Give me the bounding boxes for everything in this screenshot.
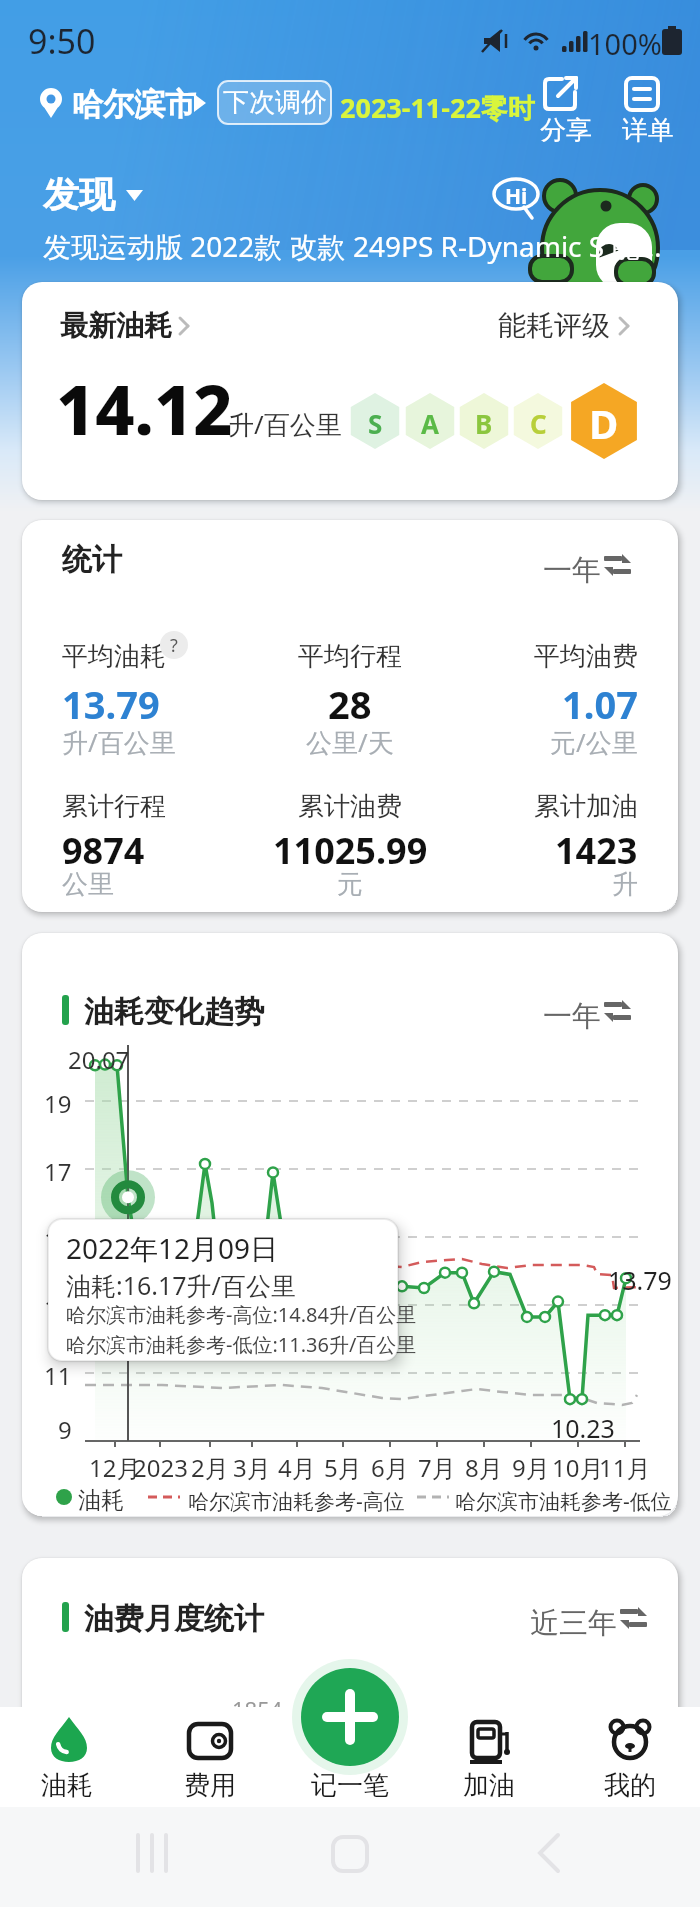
staticText: 能耗评级 [498, 308, 610, 343]
staticText: 公里 [62, 868, 114, 901]
staticText: 元/公里 [550, 724, 638, 760]
staticText: 1.07 [562, 678, 638, 730]
staticText: B [475, 406, 493, 441]
button[interactable] [50, 300, 210, 350]
staticText: 哈尔滨市油耗参考-低位:11.36升/百公里 [66, 1331, 417, 1358]
button[interactable] [536, 545, 646, 585]
staticText: 11025.99 [273, 826, 428, 875]
staticText: 1423 [555, 826, 638, 875]
staticText: 1854 [232, 1694, 283, 1724]
staticText: 哈尔滨市 [72, 85, 196, 124]
staticText: 17 [44, 1155, 72, 1188]
staticText: 9 [58, 1413, 72, 1446]
staticText: 一年 [543, 552, 601, 589]
staticText: 油耗 [78, 1486, 124, 1515]
staticText: 13.79 [608, 1263, 672, 1297]
staticText: 记一笔 [311, 1769, 389, 1802]
staticText: 2月 [191, 1451, 229, 1484]
staticText: 平均油耗 [62, 640, 166, 673]
staticText: 14.12 [56, 362, 233, 455]
staticText: 油耗:16.17升/百公里 [66, 1268, 296, 1302]
staticText: ? [170, 633, 178, 658]
staticText: 统计 [62, 541, 122, 579]
staticText: 升 [612, 868, 638, 901]
staticText: 28 [328, 678, 372, 730]
staticText: 升/百公里 [62, 724, 176, 760]
staticText: D [589, 396, 619, 450]
button[interactable] [490, 300, 650, 350]
button[interactable]: 下次调价 [218, 81, 331, 124]
staticText: 累计加油 [534, 790, 638, 823]
button[interactable] [506, 1600, 646, 1640]
staticText: 10.23 [551, 1411, 615, 1445]
staticText: 哈尔滨市油耗参考-高位 [188, 1487, 405, 1516]
staticText: 哈尔滨市油耗参考-低位 [455, 1487, 672, 1516]
staticText: 13.79 [62, 678, 160, 730]
staticText: 最新油耗 [60, 308, 172, 343]
staticText: 费用 [184, 1769, 236, 1802]
staticText: 7月 [418, 1451, 456, 1484]
staticText: 元 [337, 868, 363, 901]
staticText: 5月 [324, 1451, 362, 1484]
staticText: A [421, 406, 439, 441]
staticText: 加油 [463, 1769, 515, 1802]
staticText: 下次调价 [223, 86, 327, 119]
staticText: 平均行程 [298, 640, 402, 673]
staticText: 15 [44, 1223, 72, 1256]
staticText: 11 [44, 1359, 72, 1392]
staticText: 发现运动版 2022款 改款 249PS R-Dynamic S 能… [43, 227, 662, 265]
staticText: 我的 [604, 1769, 656, 1802]
staticText: 8月 [465, 1451, 503, 1484]
button[interactable] [590, 1707, 670, 1807]
button[interactable]: ? [160, 631, 188, 659]
staticText: 近三年 [530, 1605, 617, 1642]
button[interactable] [36, 80, 216, 124]
staticText: 升/百公里 [228, 406, 342, 442]
staticText: 平均油费 [534, 640, 638, 673]
staticText: 详单 [622, 114, 674, 147]
staticText: 哈尔滨市油耗参考-高位:14.84升/百公里 [66, 1301, 417, 1328]
staticText: 11月 [599, 1451, 651, 1484]
staticText: 油耗变化趋势 [84, 993, 264, 1031]
staticText: S [368, 406, 383, 441]
button[interactable] [27, 1707, 107, 1807]
staticText: 一年 [543, 998, 601, 1035]
staticText: 累计油费 [298, 790, 402, 823]
staticText: 3月 [233, 1451, 271, 1484]
button[interactable] [36, 168, 146, 212]
button[interactable] [449, 1707, 529, 1807]
staticText: 6月 [371, 1451, 409, 1484]
staticText: 19 [44, 1087, 72, 1120]
staticText: 累计行程 [62, 790, 166, 823]
staticText: 2023 [133, 1451, 188, 1484]
staticText: 油耗 [41, 1769, 93, 1802]
staticText: 9:50 [28, 18, 96, 64]
staticText: 分享 [540, 114, 592, 147]
staticText: 公里/天 [306, 724, 394, 760]
staticText: 12月 [89, 1451, 141, 1484]
button[interactable] [532, 70, 586, 144]
staticText: 13 [44, 1291, 72, 1324]
staticText: 20.07 [68, 1043, 130, 1076]
staticText: C [530, 406, 547, 441]
staticText: 9月 [512, 1451, 550, 1484]
button[interactable] [301, 1668, 399, 1766]
staticText: 9874 [62, 826, 145, 875]
staticText: 10月 [552, 1451, 604, 1484]
staticText: Hi [505, 182, 528, 211]
staticText: 2023-11-22零时 [340, 89, 535, 126]
button[interactable] [536, 993, 646, 1033]
button[interactable] [170, 1707, 250, 1807]
staticText: 100% [588, 24, 662, 63]
staticText: 2022年12月09日 [66, 1229, 279, 1267]
button[interactable] [616, 70, 670, 144]
staticText: 油费月度统计 [84, 1600, 264, 1638]
staticText: 4月 [278, 1451, 316, 1484]
staticText: 发现 [43, 172, 115, 217]
